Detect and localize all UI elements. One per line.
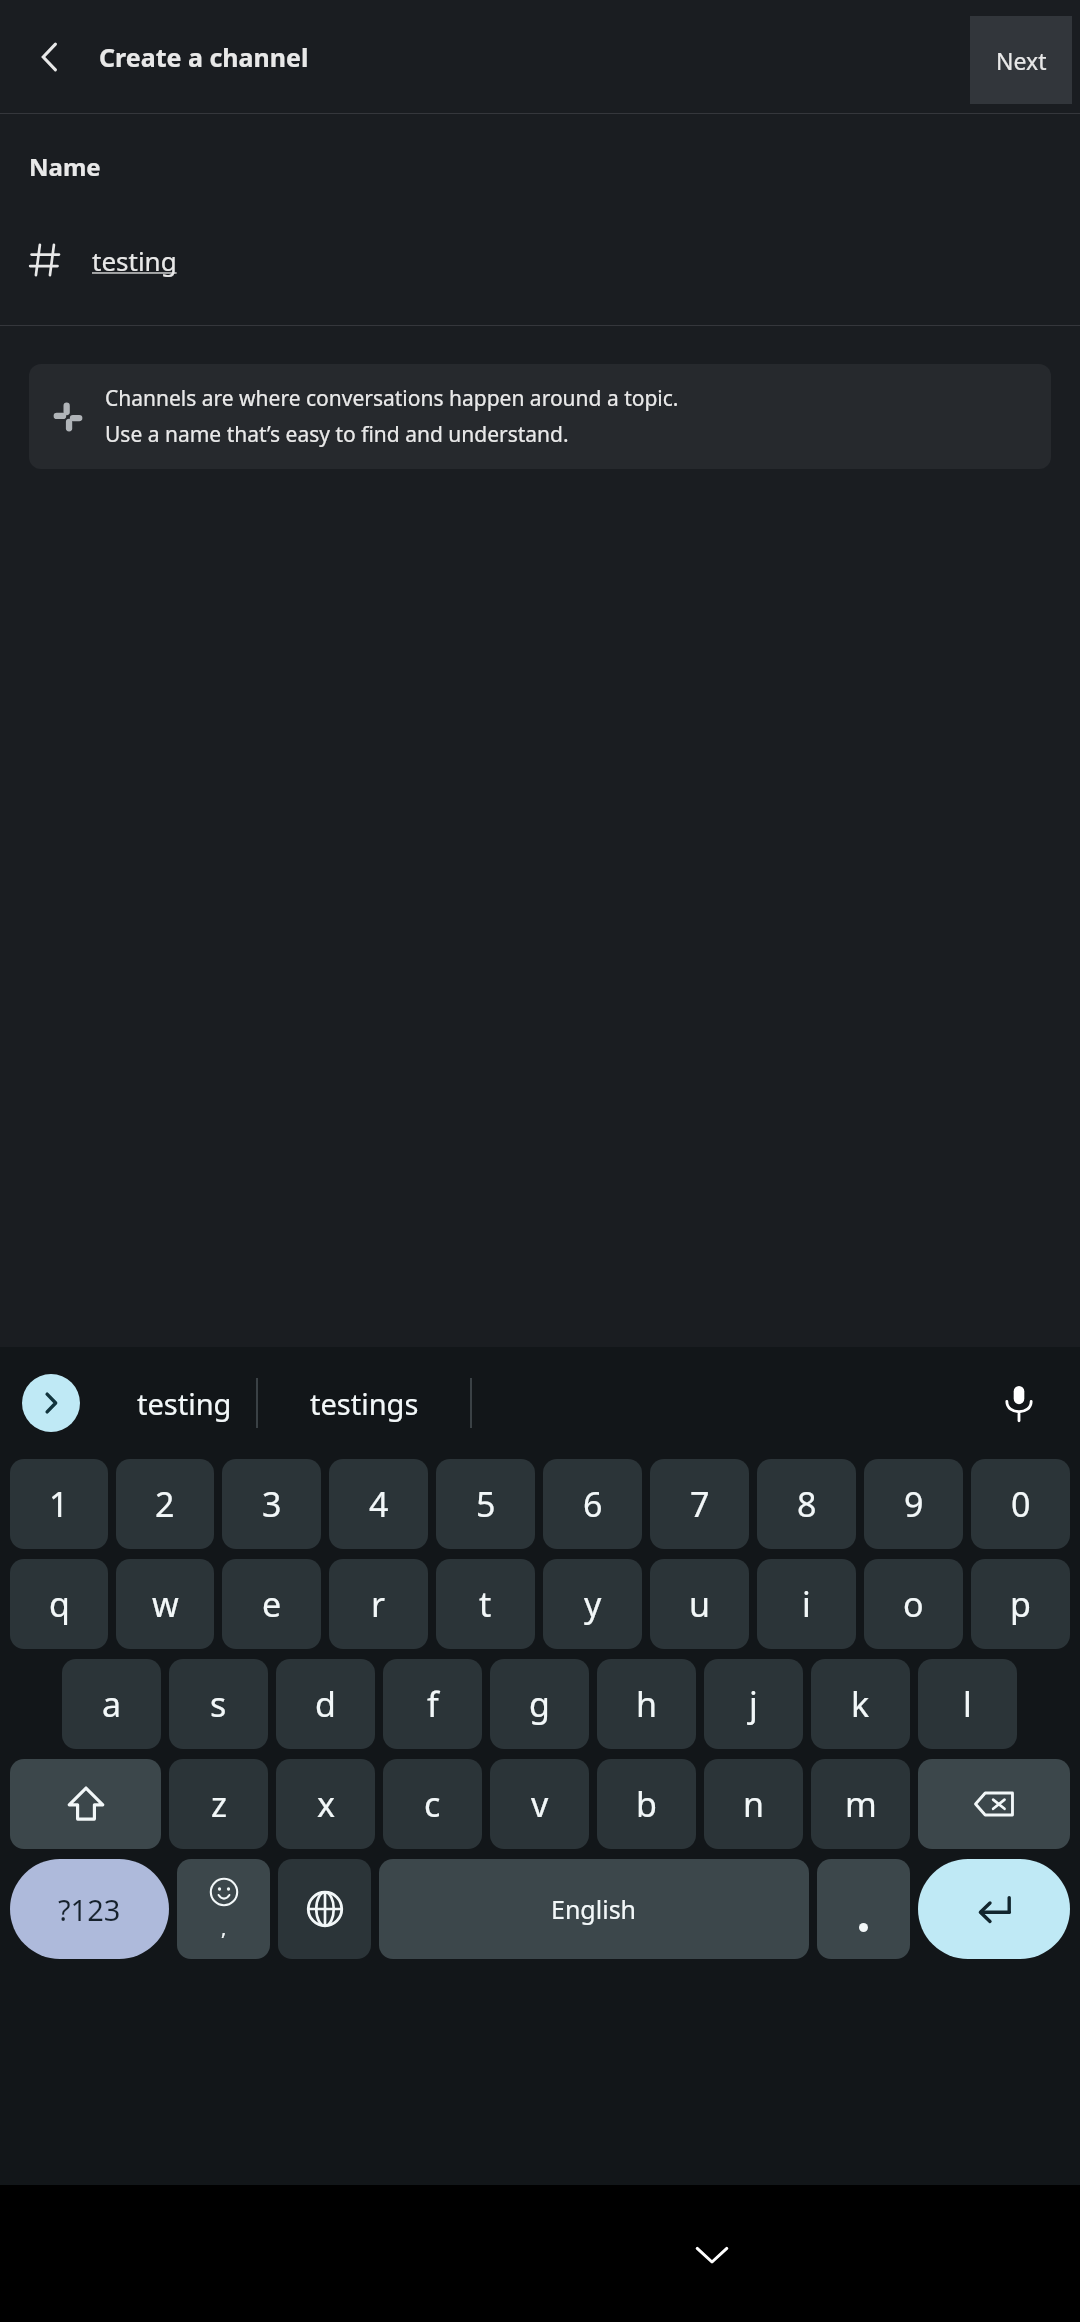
button[interactable]: b	[597, 1759, 696, 1849]
staticText: 1	[49, 1481, 69, 1527]
staticText: t	[479, 1581, 492, 1627]
button[interactable]: r	[329, 1559, 428, 1649]
staticText: e	[262, 1581, 282, 1627]
button[interactable]: s	[169, 1659, 268, 1749]
button[interactable]: f	[383, 1659, 482, 1749]
button[interactable]: z	[169, 1759, 268, 1849]
staticText: z	[211, 1781, 227, 1827]
staticText: 4	[369, 1481, 389, 1527]
staticText: m	[845, 1781, 877, 1827]
staticText: testing	[137, 1384, 232, 1423]
staticText: testings	[310, 1384, 419, 1423]
button[interactable]: q	[10, 1559, 108, 1649]
button[interactable]: x	[276, 1759, 375, 1849]
button[interactable]: w	[116, 1559, 214, 1649]
button[interactable]: 3	[222, 1459, 321, 1549]
button[interactable]: n	[704, 1759, 803, 1849]
staticText: testing	[92, 243, 177, 278]
staticText: h	[636, 1681, 658, 1727]
staticText: 7	[690, 1481, 710, 1527]
button[interactable]: 1	[10, 1459, 108, 1549]
button[interactable]: 0	[971, 1459, 1070, 1549]
button[interactable]: i	[757, 1559, 856, 1649]
staticText: Use a name that’s easy to find and under…	[105, 420, 569, 449]
staticText: q	[49, 1581, 70, 1627]
button[interactable]: 8	[757, 1459, 856, 1549]
button[interactable]: y	[543, 1559, 642, 1649]
button[interactable]: English	[379, 1859, 809, 1959]
button[interactable]: k	[811, 1659, 910, 1749]
staticText: 8	[797, 1481, 817, 1527]
button[interactable]: testing	[110, 1347, 258, 1459]
staticText: ?123	[58, 1890, 121, 1929]
button[interactable]: ?123	[10, 1859, 169, 1959]
staticText: Name	[29, 150, 101, 183]
staticText: n	[743, 1781, 765, 1827]
staticText: ,	[221, 1914, 227, 1941]
staticText: p	[1010, 1581, 1031, 1627]
staticText: a	[102, 1681, 122, 1727]
staticText: i	[802, 1581, 811, 1627]
button[interactable]: d	[276, 1659, 375, 1749]
staticText: b	[636, 1781, 657, 1827]
button[interactable]: Shift	[10, 1759, 161, 1849]
button[interactable]: 9	[864, 1459, 963, 1549]
staticText: 2	[155, 1481, 175, 1527]
button[interactable]: 2	[116, 1459, 214, 1549]
staticText: Next	[996, 45, 1047, 76]
button[interactable]: 7	[650, 1459, 749, 1549]
staticText: y	[584, 1581, 602, 1627]
button[interactable]: a	[62, 1659, 161, 1749]
button[interactable]: t	[436, 1559, 535, 1649]
button[interactable]: j	[704, 1659, 803, 1749]
button[interactable]: 4	[329, 1459, 428, 1549]
staticText: k	[851, 1681, 870, 1727]
button[interactable]: testing	[0, 229, 1080, 291]
staticText: 5	[476, 1481, 496, 1527]
button[interactable]: Backspace	[918, 1759, 1070, 1849]
button[interactable]: e	[222, 1559, 321, 1649]
button[interactable]: 6	[543, 1459, 642, 1549]
button[interactable]: Enter	[918, 1859, 1070, 1959]
button[interactable]: Voice input	[986, 1370, 1052, 1436]
staticText: j	[749, 1681, 758, 1727]
staticText: l	[963, 1681, 972, 1727]
button[interactable]: p	[971, 1559, 1070, 1649]
button[interactable]: u	[650, 1559, 749, 1649]
staticText: c	[424, 1781, 441, 1827]
button[interactable]: m	[811, 1759, 910, 1849]
button[interactable]: l	[918, 1659, 1017, 1749]
button[interactable]: Change language	[278, 1859, 371, 1959]
button[interactable]: c	[383, 1759, 482, 1849]
button[interactable]: 5	[436, 1459, 535, 1549]
button[interactable]: Back	[18, 25, 82, 89]
button[interactable]: testings	[280, 1347, 448, 1459]
staticText: English	[551, 1892, 637, 1926]
staticText: u	[689, 1581, 711, 1627]
staticText: Channels are where conversations happen …	[105, 384, 679, 413]
staticText: x	[317, 1781, 335, 1827]
staticText: d	[315, 1681, 336, 1727]
staticText: 6	[583, 1481, 603, 1527]
button[interactable]: h	[597, 1659, 696, 1749]
staticText: 3	[262, 1481, 282, 1527]
staticText: w	[152, 1581, 179, 1627]
button[interactable]: More suggestions	[22, 1374, 80, 1432]
button[interactable]: Next	[970, 16, 1072, 104]
staticText: Create a channel	[99, 40, 309, 74]
staticText: f	[427, 1681, 439, 1727]
button[interactable]: g	[490, 1659, 589, 1749]
button[interactable]	[817, 1859, 910, 1959]
staticText: r	[371, 1581, 386, 1627]
staticText: 0	[1011, 1481, 1031, 1527]
button[interactable]: v	[490, 1759, 589, 1849]
staticText: o	[903, 1581, 924, 1627]
button[interactable]: Emoji	[177, 1859, 270, 1959]
button[interactable]: o	[864, 1559, 963, 1649]
staticText: g	[529, 1681, 550, 1727]
staticText: 9	[904, 1481, 924, 1527]
button[interactable]: Hide keyboard	[667, 2209, 757, 2299]
staticText: v	[531, 1781, 549, 1827]
staticText: s	[210, 1681, 227, 1727]
